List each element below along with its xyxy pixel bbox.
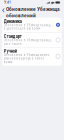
staticText: время <box>4 60 13 64</box>
staticText: Динамика <box>4 19 22 24</box>
button[interactable]: Стандарт <box>2 33 62 47</box>
staticText: Стандарт <box>4 34 22 39</box>
staticText: 9:41 <box>4 1 11 4</box>
staticText: в удобное для вас время <box>4 27 41 30</box>
staticText: раз в неделю <box>4 42 22 45</box>
staticText: Обновления в Убежище приходят <box>4 38 52 42</box>
button[interactable]: Динамика <box>2 17 62 33</box>
button[interactable]: Ручной <box>2 48 62 66</box>
staticText: Обновления в Убежище приходят <box>4 23 52 27</box>
staticText: обновлений <box>6 12 36 19</box>
button[interactable]: Назад <box>2 6 5 14</box>
staticText: Обновление Убежища <box>6 6 60 12</box>
staticText: Ручной <box>4 49 17 54</box>
staticText: Обновления в Убежище можно <box>4 53 50 57</box>
staticText: установить вручную в любое <box>4 57 44 60</box>
